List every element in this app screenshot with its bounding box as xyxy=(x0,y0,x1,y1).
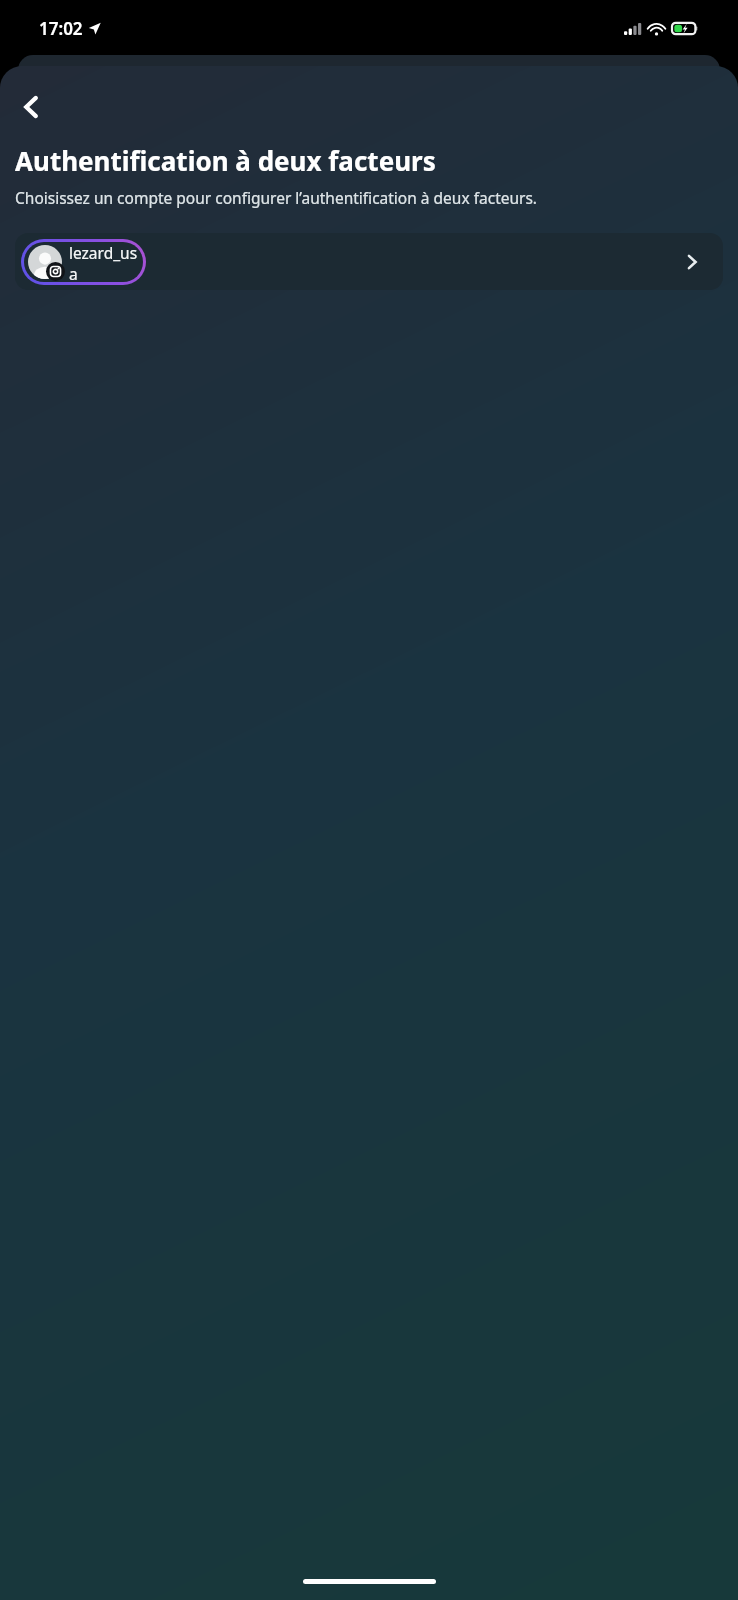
staticText: Authentification à deux facteurs xyxy=(15,143,436,178)
button[interactable]: Back xyxy=(8,83,56,131)
button[interactable]: lezard_usa xyxy=(15,233,723,290)
other: Open xyxy=(679,249,705,275)
staticText: 17:02 xyxy=(39,17,83,40)
staticText: Choisissez un compte pour configurer l’a… xyxy=(15,187,538,208)
staticText: lezard_usa xyxy=(69,242,143,282)
